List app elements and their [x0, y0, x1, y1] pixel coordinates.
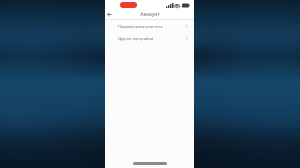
button[interactable]: Назад [105, 10, 114, 19]
staticText: Аккаунт [140, 11, 160, 18]
button[interactable]: Подключение или сеть [105, 20, 194, 32]
staticText: Подключение или сеть [118, 24, 163, 29]
staticText: Другие настройки [118, 36, 154, 41]
button[interactable]: Другие настройки [105, 32, 194, 44]
